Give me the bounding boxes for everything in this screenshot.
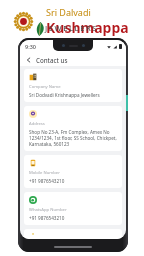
staticText: Company Name xyxy=(29,84,61,90)
staticText: Shop No 23-A, Fm Complex, Amex No 1234/1… xyxy=(29,129,117,147)
button[interactable]: Back xyxy=(24,55,34,65)
button[interactable]: Company Name xyxy=(24,69,122,102)
staticText: Address xyxy=(29,121,45,127)
staticText: Contact us xyxy=(36,56,68,64)
button[interactable]: Mobile Number xyxy=(24,155,122,188)
staticText: Mobile Number xyxy=(29,170,60,176)
staticText: Kushmappa xyxy=(46,18,129,36)
button[interactable]: Address xyxy=(24,106,122,151)
button[interactable]: WhatsApp Number xyxy=(24,192,122,225)
staticText: +91 9876543210 xyxy=(29,178,65,184)
staticText: WhatsApp Number xyxy=(29,207,67,213)
staticText: Sri Dalvadi xyxy=(46,6,91,18)
staticText: Sri Dodvadi Krishnappa Jewellers xyxy=(29,92,100,98)
staticText: +91 9876543210 xyxy=(29,215,65,221)
button[interactable]: Timings xyxy=(24,229,122,239)
staticText: JEWELLERS xyxy=(45,23,99,33)
staticText: 9:30 xyxy=(25,43,36,50)
